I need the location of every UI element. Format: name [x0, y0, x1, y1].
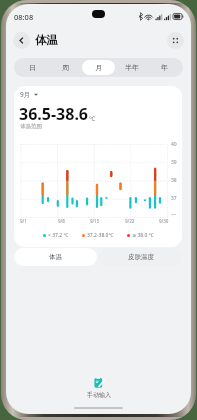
button[interactable]: 体温: [14, 248, 97, 266]
staticText: 08:08: [14, 12, 34, 22]
button[interactable]: 半年: [115, 60, 148, 75]
staticText: 体温: [49, 253, 62, 261]
button[interactable]: 年: [148, 60, 181, 75]
staticText: < 37.2 ℃: [48, 232, 69, 239]
staticText: 9/30: [159, 218, 169, 224]
staticText: 9/1: [20, 218, 27, 224]
staticText: 月: [95, 63, 102, 72]
staticText: 36: [171, 213, 177, 215]
staticText: 37.2-38.0℃: [87, 232, 114, 239]
button[interactable]: Back: [13, 32, 30, 49]
staticText: 9/8: [58, 218, 65, 224]
staticText: 40: [171, 141, 177, 148]
staticText: 37: [171, 195, 177, 202]
button[interactable]: 手动输入 Manual entry: [6, 377, 191, 399]
staticText: 皮肤温度: [128, 253, 154, 261]
button[interactable]: More options: [167, 32, 184, 49]
button[interactable]: 皮肤温度: [99, 248, 182, 266]
staticText: 半年: [125, 63, 139, 72]
staticText: 周: [62, 63, 69, 72]
staticText: 9月: [20, 90, 31, 99]
staticText: 手动输入: [87, 391, 111, 399]
button[interactable]: 日: [16, 60, 49, 75]
staticText: 38: [171, 177, 177, 184]
button[interactable]: 月: [82, 60, 115, 75]
staticText: 9/22: [125, 218, 135, 224]
staticText: ≥ 38.0 ℃: [132, 232, 154, 239]
staticText: 36.5-38.6: [19, 103, 89, 125]
staticText: 年: [161, 63, 168, 72]
staticText: 体温范围: [20, 123, 42, 130]
staticText: 39: [171, 159, 177, 166]
button[interactable]: 9月: [20, 90, 38, 99]
staticText: ℃: [89, 115, 95, 123]
staticText: 日: [29, 63, 36, 72]
staticText: 体温: [35, 33, 58, 47]
staticText: 9/15: [90, 218, 100, 224]
button[interactable]: 周: [49, 60, 82, 75]
